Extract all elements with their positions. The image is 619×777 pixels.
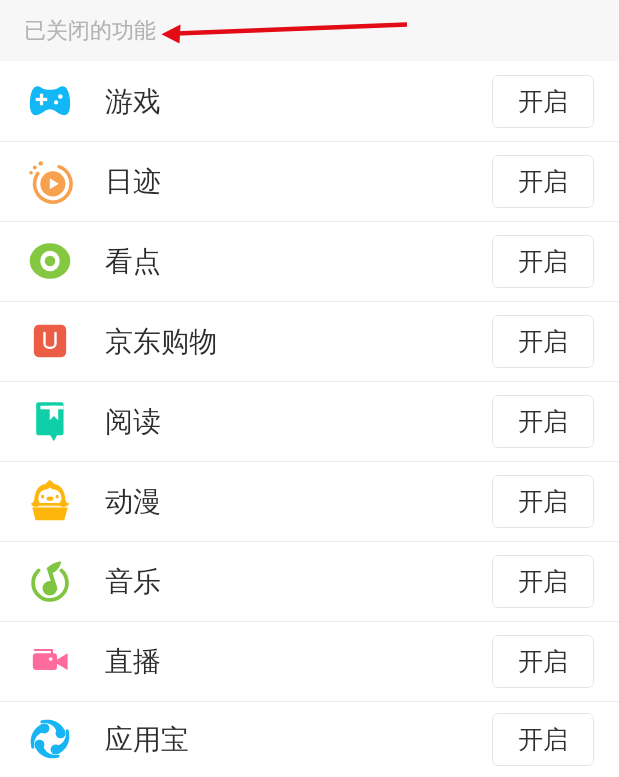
button[interactable]: 开启 [492,475,594,528]
button[interactable]: 应用宝 [0,701,619,777]
button[interactable]: 开启 [492,395,594,448]
staticText: 开启 [518,326,568,357]
staticText: 已关闭的功能 [24,17,156,45]
button[interactable]: 直播 [0,621,619,701]
staticText: 开启 [518,406,568,437]
button[interactable]: 音乐 [0,541,619,621]
staticText: 京东购物 [105,324,217,359]
staticText: 开启 [518,166,568,197]
staticText: 日迹 [105,164,161,199]
button[interactable]: 动漫 [0,461,619,541]
button[interactable]: 日迹 [0,141,619,221]
staticText: 直播 [105,644,161,679]
button[interactable]: 开启 [492,635,594,688]
button[interactable]: 开启 [492,235,594,288]
staticText: 开启 [518,486,568,517]
staticText: 游戏 [105,84,161,119]
staticText: 开启 [518,566,568,597]
staticText: 开启 [518,86,568,117]
button[interactable]: 看点 [0,221,619,301]
staticText: 看点 [105,244,161,279]
button[interactable]: 开启 [492,155,594,208]
button[interactable]: 开启 [492,75,594,128]
staticText: 应用宝 [105,722,189,757]
button[interactable]: 阅读 [0,381,619,461]
button[interactable]: 开启 [492,713,594,766]
button[interactable]: 京东购物 [0,301,619,381]
staticText: 开启 [518,646,568,677]
staticText: 音乐 [105,564,161,599]
staticText: 开启 [518,724,568,755]
button[interactable]: 开启 [492,555,594,608]
button[interactable]: 游戏 [0,61,619,141]
staticText: 阅读 [105,404,161,439]
staticText: 开启 [518,246,568,277]
staticText: 动漫 [105,484,161,519]
button[interactable]: 开启 [492,315,594,368]
